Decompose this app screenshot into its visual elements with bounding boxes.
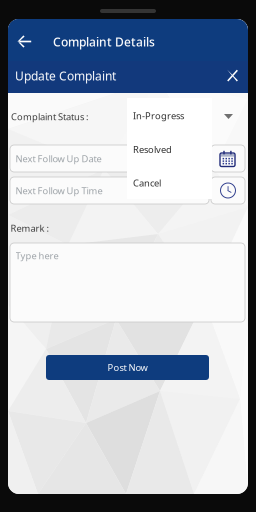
staticText: Next Follow Up Date [15,152,101,165]
button[interactable]: Pick date [211,145,245,172]
staticText: Type here [15,249,58,262]
button[interactable]: Post Now [46,355,209,380]
staticText: Cancel [133,177,161,189]
button[interactable]: Type here [10,243,245,322]
staticText: Complaint Status : [11,110,89,123]
button[interactable]: Pick time [211,177,245,204]
button[interactable]: Close [220,64,244,88]
button[interactable]: Back [8,19,40,61]
staticText: Next Follow Up Time [15,184,102,197]
button[interactable]: Next Follow Up Date [10,145,209,172]
button[interactable]: Select status [217,105,241,129]
staticText: Remark : [10,222,49,234]
staticText: Complaint Details [53,34,155,50]
staticText: In-Progress [133,109,184,122]
staticText: Post Now [107,361,147,374]
button[interactable]: Next Follow Up Time [10,177,209,204]
staticText: Update Complaint [15,68,116,84]
staticText: Resolved [133,143,172,156]
button[interactable]: Resolved [127,132,212,165]
button[interactable]: In-Progress [127,98,212,132]
button[interactable]: Cancel [127,165,212,199]
